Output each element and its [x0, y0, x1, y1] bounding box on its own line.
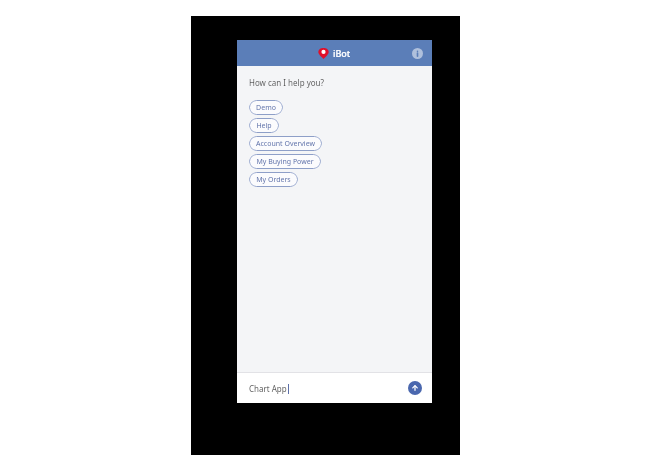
button[interactable]: Demo	[249, 100, 283, 115]
button[interactable]: Information	[410, 46, 424, 60]
button[interactable]: Chart App	[249, 383, 289, 394]
staticText: Demo	[256, 103, 276, 113]
staticText: My Buying Power	[256, 157, 314, 167]
staticText: Chart App	[249, 383, 287, 394]
button[interactable]: My Orders	[249, 172, 298, 187]
button[interactable]: Account Overview	[249, 136, 322, 151]
staticText: Help	[256, 121, 272, 131]
staticText: How can I help you?	[249, 77, 324, 88]
button[interactable]: Send	[408, 381, 422, 395]
button[interactable]: My Buying Power	[249, 154, 321, 169]
staticText: My Orders	[256, 175, 291, 185]
staticText: Account Overview	[256, 139, 315, 149]
staticText: iBot	[333, 47, 351, 59]
button[interactable]: Help	[249, 118, 279, 133]
